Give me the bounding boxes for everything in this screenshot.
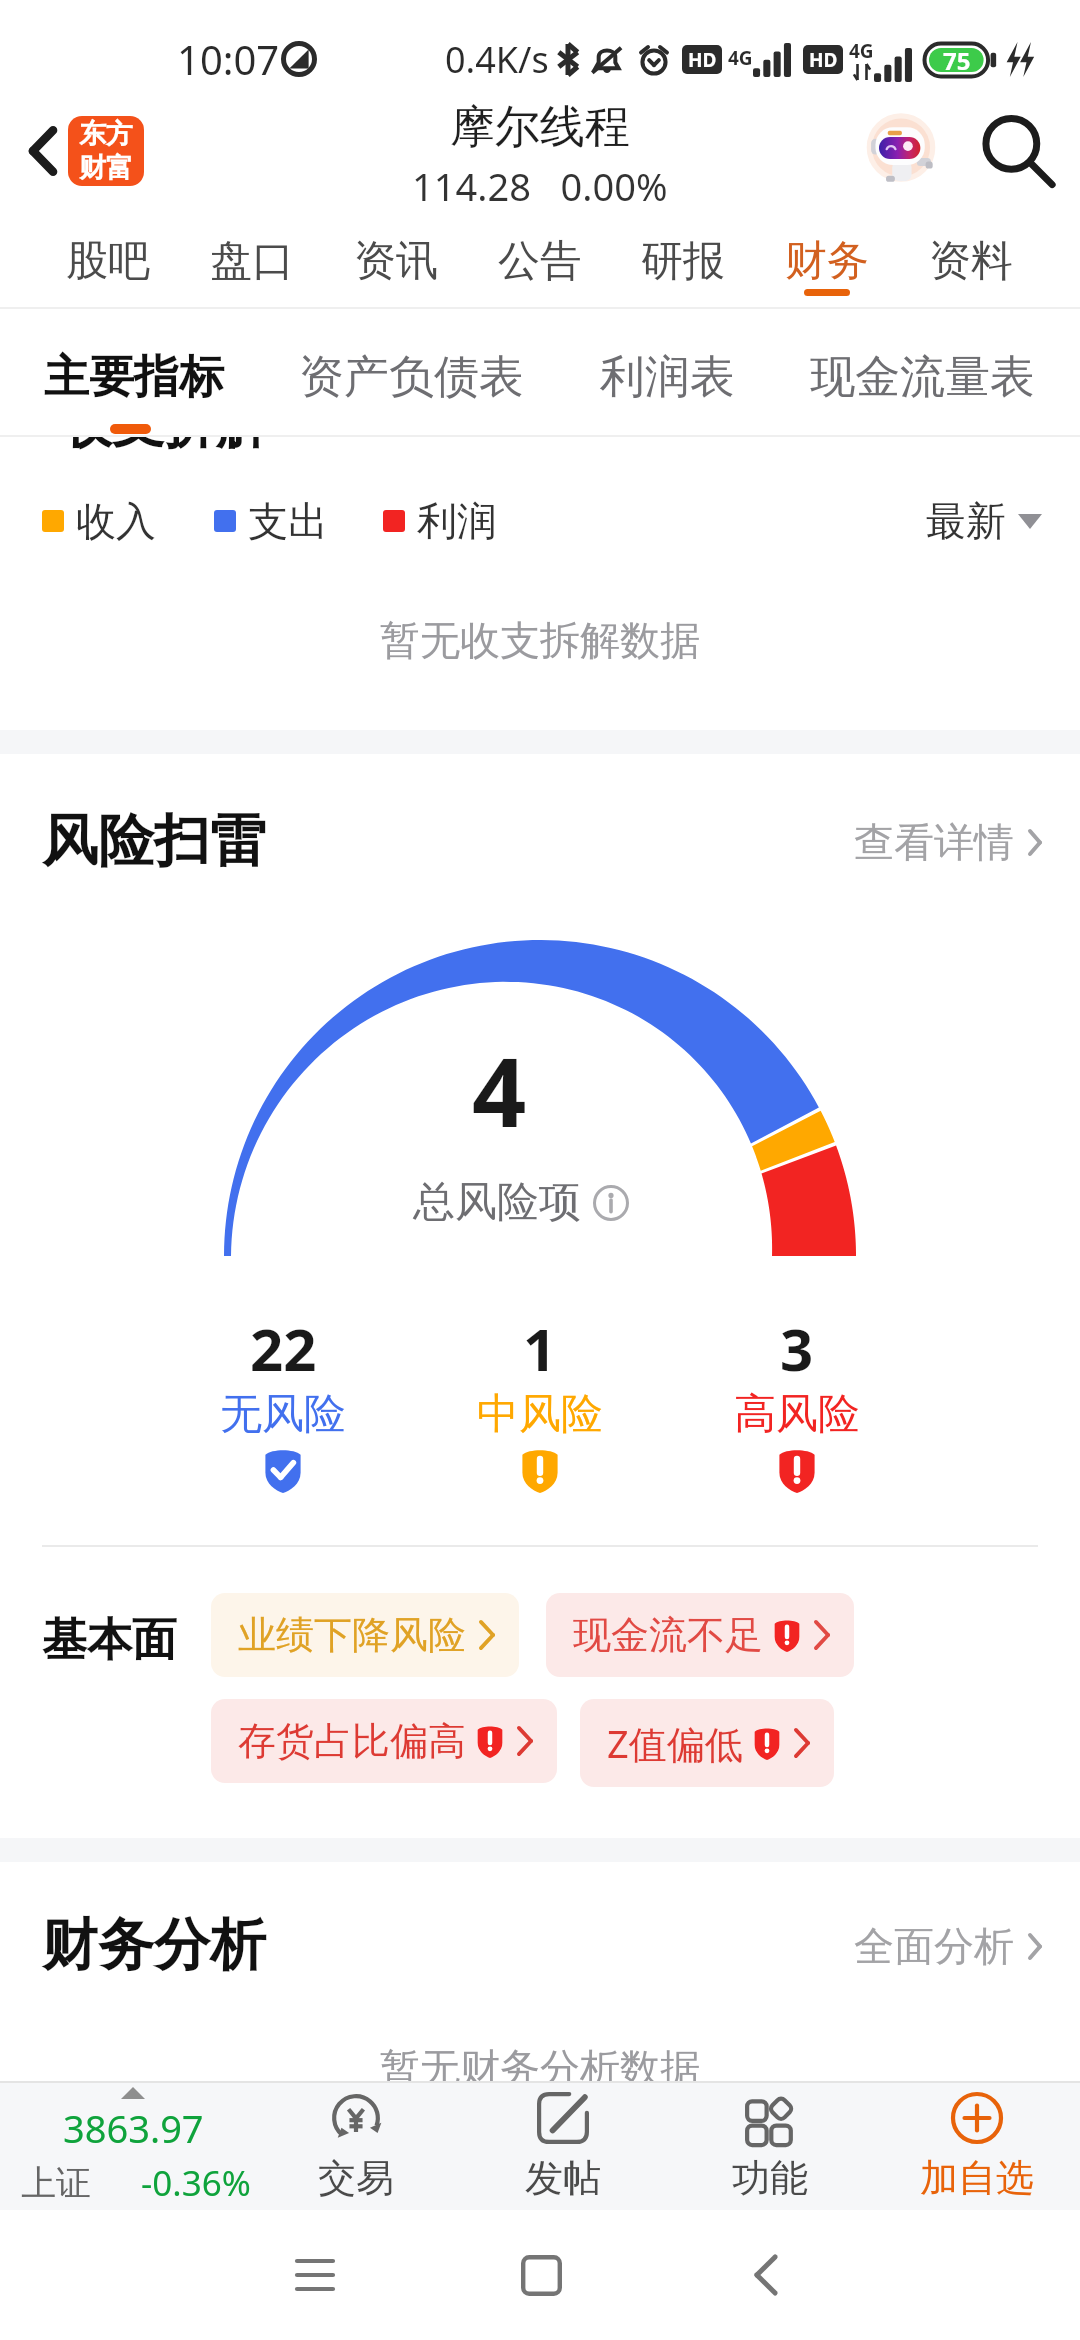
staticText: 75 (943, 44, 971, 77)
staticText: 利润表 (600, 349, 735, 406)
staticText: 现金流不足 (573, 1611, 763, 1659)
staticText: 收支拆解 (60, 437, 268, 450)
button[interactable]: 资讯 (354, 210, 438, 309)
button[interactable]: 存货占比偏高 (211, 1699, 557, 1783)
button[interactable]: 利润表 (600, 309, 735, 415)
button[interactable]: Home (493, 2227, 589, 2323)
staticText: 现金流量表 (810, 349, 1035, 406)
staticText: 4 (472, 1025, 527, 1154)
staticText: 暂无收支拆解数据 (380, 615, 700, 665)
button[interactable]: 现金流不足 (546, 1593, 854, 1677)
staticText: 4G (728, 45, 753, 71)
button[interactable]: 股吧 (66, 210, 150, 309)
button[interactable]: 查看详情 (854, 817, 1042, 867)
button[interactable]: 加自选 (873, 2083, 1080, 2210)
staticText: 财务分析 (42, 1910, 266, 1981)
button[interactable]: 资产负债表 (299, 309, 524, 415)
staticText: 上证 (21, 2161, 91, 2205)
staticText: Z值偏低 (607, 1717, 743, 1769)
staticText: 10:07 (177, 32, 280, 86)
staticText: 摩尔线程 (450, 99, 630, 156)
staticText: 公告 (498, 235, 582, 288)
button[interactable]: 财务 (785, 210, 869, 309)
staticText: 东方 (79, 117, 133, 151)
staticText: 主要指标 (44, 349, 224, 406)
button[interactable]: 最新 (926, 496, 1042, 546)
staticText: 114.28 0.00% (412, 160, 668, 212)
button[interactable]: 交易 (252, 2083, 459, 2210)
button[interactable]: 全面分析 (854, 1921, 1042, 1971)
staticText: -0.36% (141, 2159, 251, 2207)
staticText: 风险扫雷 (42, 806, 266, 877)
staticText: 财务 (785, 235, 869, 288)
button[interactable]: 现金流量表 (810, 309, 1035, 415)
button[interactable]: Recents (267, 2227, 363, 2323)
staticText: 财富 (79, 151, 133, 185)
button[interactable]: 公告 (498, 210, 582, 309)
staticText: 全面分析 (854, 1921, 1014, 1971)
button[interactable]: 盘口 (210, 210, 294, 309)
staticText: 股吧 (66, 235, 150, 288)
staticText: 利润 (417, 496, 497, 546)
button[interactable]: Search (962, 96, 1072, 206)
staticText: 交易 (318, 2154, 394, 2202)
staticText: 资讯 (354, 235, 438, 288)
button[interactable]: 主要指标 (44, 309, 224, 415)
staticText: HD (688, 47, 717, 73)
staticText: 22 (250, 1309, 317, 1388)
button[interactable]: 研报 (641, 210, 725, 309)
staticText: 无风险 (220, 1388, 346, 1441)
staticText: 收入 (76, 496, 156, 546)
staticText: 研报 (641, 235, 725, 288)
staticText: 高风险 (734, 1388, 860, 1441)
staticText: 存货占比偏高 (238, 1717, 466, 1765)
staticText: HD (809, 47, 838, 73)
staticText: 中风险 (477, 1388, 603, 1441)
staticText: 支出 (248, 496, 328, 546)
button[interactable]: 功能 (666, 2083, 873, 2210)
staticText: 发帖 (525, 2154, 601, 2202)
staticText: 3 (780, 1309, 814, 1388)
button[interactable]: 发帖 (459, 2083, 666, 2210)
staticText: 基本面 (42, 1612, 177, 1669)
staticText: 资产负债表 (299, 349, 524, 406)
button[interactable]: Back (0, 96, 86, 206)
staticText: 加自选 (920, 2154, 1034, 2202)
staticText: 0.4K/s (445, 35, 549, 84)
staticText: 业绩下降风险 (238, 1611, 466, 1659)
button[interactable]: AI assistant (857, 107, 945, 195)
button[interactable]: 3863.97 (0, 2083, 252, 2210)
staticText: 查看详情 (854, 817, 1014, 867)
staticText: 4G (849, 38, 874, 64)
staticText: 最新 (926, 496, 1006, 546)
button[interactable]: 资料 (929, 210, 1013, 309)
staticText: 盘口 (210, 235, 294, 288)
staticText: 资料 (929, 235, 1013, 288)
staticText: 功能 (732, 2154, 808, 2202)
staticText: 3863.97 (63, 2102, 204, 2154)
button[interactable]: 业绩下降风险 (211, 1593, 519, 1677)
button[interactable]: East Money logo (68, 116, 144, 186)
staticText: 总风险项 (413, 1176, 581, 1229)
button[interactable]: Z值偏低 (580, 1699, 834, 1787)
staticText: 暂无财务分析数据 (380, 2043, 700, 2093)
button[interactable]: Back (718, 2227, 814, 2323)
staticText: 1 (523, 1309, 557, 1388)
